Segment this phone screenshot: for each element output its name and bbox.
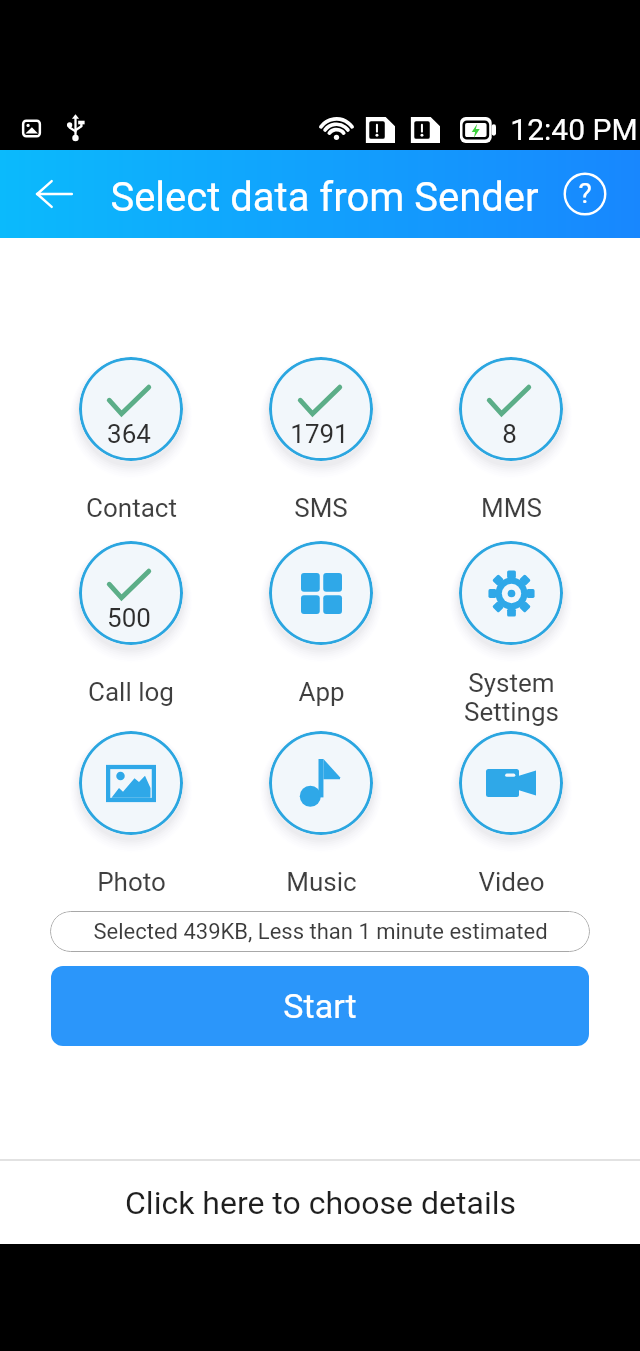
staticText: Click here to choose details bbox=[125, 1184, 516, 1222]
button[interactable]: 1791 bbox=[226, 350, 416, 523]
button[interactable]: Selected 439KB, Less than 1 minute estim… bbox=[50, 911, 590, 952]
button[interactable]: App bbox=[226, 534, 416, 707]
staticText: Video bbox=[478, 867, 545, 897]
button[interactable]: Back bbox=[25, 165, 83, 223]
staticText: 8 bbox=[502, 419, 517, 449]
staticText: Selected 439KB, Less than 1 minute estim… bbox=[93, 919, 548, 945]
staticText: 1791 bbox=[290, 419, 349, 449]
staticText: Photo bbox=[97, 867, 166, 897]
button[interactable]: Photo bbox=[36, 724, 226, 897]
staticText: Call log bbox=[88, 677, 174, 707]
staticText: 364 bbox=[107, 419, 151, 449]
button[interactable]: 364 bbox=[36, 350, 226, 523]
staticText: ? bbox=[578, 177, 592, 210]
button[interactable]: Help bbox=[560, 169, 610, 219]
staticText: Contact bbox=[86, 493, 177, 523]
button[interactable]: System Settings bbox=[416, 534, 606, 727]
button[interactable]: Music bbox=[226, 724, 416, 897]
staticText: App bbox=[298, 677, 345, 707]
button[interactable]: 8 bbox=[416, 350, 606, 523]
button[interactable]: Start bbox=[51, 966, 589, 1046]
button[interactable]: 500 bbox=[36, 534, 226, 707]
staticText: System Settings bbox=[464, 668, 559, 727]
staticText: Start bbox=[283, 986, 357, 1026]
staticText: 500 bbox=[107, 603, 151, 633]
staticText: Select data from Sender bbox=[110, 174, 539, 221]
staticText: MMS bbox=[481, 493, 542, 523]
staticText: Music bbox=[286, 867, 357, 897]
staticText: SMS bbox=[294, 493, 348, 523]
button[interactable]: Video bbox=[416, 724, 606, 897]
button[interactable]: Click here to choose details bbox=[0, 1161, 640, 1244]
staticText: 12:40 PM bbox=[510, 112, 638, 147]
